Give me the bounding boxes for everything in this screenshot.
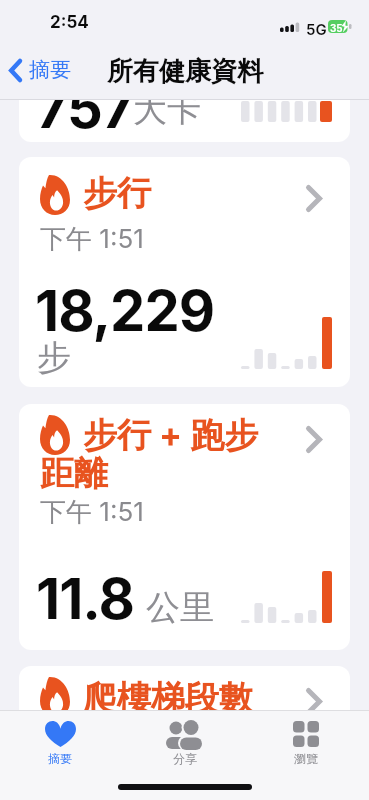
button[interactable]: 爬樓梯段數	[19, 666, 350, 746]
staticText: 5G	[306, 20, 327, 38]
staticText: 757	[36, 74, 134, 142]
staticText: 步行	[83, 172, 151, 215]
button[interactable]: 757	[19, 40, 350, 142]
button[interactable]: 分享	[154, 716, 216, 780]
staticText: 所有健康資料	[107, 55, 263, 88]
button[interactable]: 步行 + 跑步	[19, 404, 350, 650]
staticText: 公里	[146, 586, 214, 629]
staticText: 瀏覽	[294, 751, 318, 766]
staticText: 2:54	[50, 12, 89, 33]
staticText: 35	[330, 22, 343, 34]
staticText: 摘要	[29, 57, 71, 83]
staticText: 18,229	[35, 277, 215, 345]
staticText: 距離	[40, 452, 108, 495]
staticText: 分享	[173, 751, 197, 766]
staticText: 11.8	[36, 565, 134, 633]
staticText: 步	[37, 336, 71, 379]
staticText: 下午 1:51	[40, 223, 144, 256]
staticText: 步行 + 跑步	[83, 414, 259, 457]
staticText: 大卡	[133, 88, 201, 131]
staticText: 下午 1:51	[40, 496, 144, 529]
button[interactable]: 摘要	[30, 716, 92, 780]
staticText: 摘要	[48, 751, 72, 766]
button[interactable]: 瀏覽	[275, 716, 337, 780]
button[interactable]: 步行	[19, 157, 350, 387]
staticText: 爬樓梯段數	[83, 677, 253, 720]
